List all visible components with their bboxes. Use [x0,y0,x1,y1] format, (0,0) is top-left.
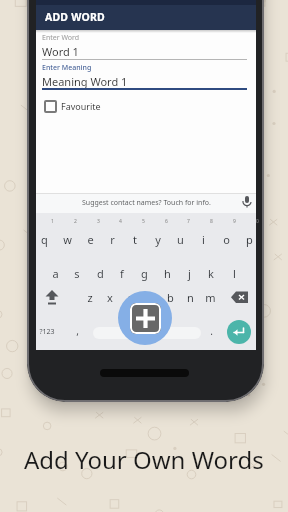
staticText: e [87,232,94,247]
staticText: q [41,232,48,247]
button[interactable]: j [179,264,199,282]
button[interactable]: d [90,264,110,282]
staticText: o [223,232,230,247]
button[interactable]: p [239,230,259,248]
staticText: Favourite [61,100,101,112]
staticText: 5 [142,218,145,225]
button[interactable] [93,327,201,339]
button[interactable]: b [160,288,180,306]
staticText: l [233,266,236,281]
staticText: w [63,232,72,247]
staticText: t [133,232,137,247]
staticText: f [120,266,124,281]
staticText: i [202,232,205,247]
button[interactable]: Suggest contact names? Touch for info. [36,193,256,213]
button[interactable]: ADD WORD [45,4,256,30]
staticText: Enter Word [42,33,80,43]
staticText: 6 [165,218,168,225]
button[interactable]: u [170,230,190,248]
button[interactable]: ?123 [37,323,57,341]
button[interactable]: z [80,288,100,306]
staticText: 0 [256,218,259,225]
button[interactable]: a [45,264,65,282]
staticText: j [188,266,191,281]
staticText: 1 [51,218,54,225]
staticText: 8 [210,218,213,225]
staticText: Add Your Own Words [24,443,264,476]
staticText: Word 1 [42,44,79,59]
staticText: y [155,232,161,247]
button[interactable]: k [201,264,221,282]
button[interactable]: r [102,230,122,248]
staticText: 3 [97,218,100,225]
button[interactable]: m [200,288,220,306]
button[interactable]: x [100,288,120,306]
button[interactable] [44,290,60,305]
staticText: ADD WORD [45,10,105,24]
button[interactable]: . [201,322,221,340]
staticText: k [208,266,214,281]
staticText: v [147,290,153,305]
staticText: 9 [233,218,236,225]
staticText: . [210,324,213,338]
button[interactable]: t [125,230,145,248]
button[interactable]: y [148,230,168,248]
button[interactable]: n [180,288,200,306]
button[interactable]: f [112,264,132,282]
button[interactable] [227,320,251,344]
staticText: n [187,290,194,305]
button[interactable]: o [216,230,236,248]
button[interactable]: l [224,264,244,282]
button[interactable]: h [157,264,177,282]
staticText: 4 [119,218,122,225]
staticText: s [74,266,80,281]
staticText: b [167,290,174,305]
staticText: x [107,290,113,305]
button[interactable]: w [57,230,77,248]
button[interactable]: c [120,288,140,306]
button[interactable] [118,291,172,345]
staticText: , [76,324,79,338]
staticText: ?123 [39,327,55,337]
staticText: Suggest contact names? Touch for info. [82,198,211,208]
staticText: 2 [74,218,77,225]
button[interactable]: i [193,230,213,248]
button[interactable]: e [80,230,100,248]
staticText: m [205,290,216,305]
staticText: c [127,290,133,305]
button[interactable]: s [67,264,87,282]
button[interactable]: v [140,288,160,306]
staticText: g [141,266,148,281]
staticText: z [87,290,93,305]
staticText: h [164,266,171,281]
button[interactable] [231,291,250,304]
staticText: a [52,266,59,281]
button[interactable]: g [134,264,154,282]
button[interactable] [242,196,252,208]
staticText: r [110,232,115,247]
button[interactable]: q [34,230,54,248]
staticText: d [97,266,104,281]
button[interactable]: Favourite [44,100,134,116]
button[interactable]: , [67,322,87,340]
staticText: u [177,232,184,247]
staticText: Meaning Word 1 [42,74,128,89]
staticText: Enter Meaning [42,63,92,73]
staticText: 7 [187,218,190,225]
staticText: p [246,232,253,247]
